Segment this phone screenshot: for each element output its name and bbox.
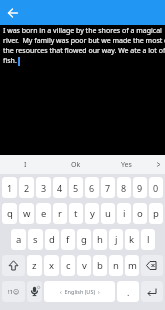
button[interactable]: a	[11, 229, 26, 250]
button[interactable]: !1☺	[2, 281, 25, 302]
button[interactable]	[7, 7, 19, 19]
button[interactable]: Yes	[101, 155, 152, 174]
staticText: u	[105, 207, 111, 220]
staticText: z	[32, 259, 37, 272]
staticText: d	[49, 233, 55, 246]
button[interactable]: q	[2, 203, 17, 224]
button[interactable]: p	[149, 203, 163, 224]
button[interactable]: b	[93, 255, 107, 276]
staticText: 0	[153, 182, 159, 194]
button[interactable]: v	[77, 255, 91, 276]
button[interactable]: Ok	[50, 155, 101, 174]
button[interactable]: t	[69, 203, 83, 224]
staticText: t	[74, 207, 78, 220]
staticText: I	[24, 160, 27, 170]
staticText: 7	[105, 182, 111, 194]
button[interactable]: h	[93, 229, 107, 250]
staticText: 3	[41, 182, 47, 194]
button[interactable]: u	[101, 203, 115, 224]
button[interactable]: .	[117, 281, 139, 302]
staticText: 4	[57, 182, 63, 194]
staticText: k	[129, 233, 135, 246]
staticText: c	[66, 259, 71, 272]
button[interactable]: s	[28, 229, 43, 250]
button[interactable]: n	[109, 255, 123, 276]
staticText: .	[127, 286, 130, 298]
staticText: y	[90, 207, 95, 220]
staticText: 5	[73, 182, 79, 194]
button[interactable]: ‹ English (US) ›	[44, 281, 115, 302]
staticText: o	[137, 207, 143, 220]
button[interactable]: 4	[53, 177, 67, 198]
staticText: r	[58, 207, 62, 220]
button[interactable]	[27, 281, 42, 302]
staticText: m	[128, 259, 137, 272]
staticText: 9	[137, 182, 143, 194]
staticText: a	[16, 233, 22, 246]
staticText: p	[153, 207, 159, 220]
staticText: ‹ English (US) ›	[60, 288, 100, 295]
button[interactable]: 6	[85, 177, 99, 198]
button[interactable]: 7	[101, 177, 115, 198]
staticText: s	[33, 233, 38, 246]
button[interactable]: c	[61, 255, 75, 276]
button[interactable]: 0	[149, 177, 163, 198]
button[interactable]: d	[45, 229, 59, 250]
button[interactable]: I	[0, 155, 50, 174]
button[interactable]: 3	[36, 177, 51, 198]
staticText: j	[115, 233, 118, 246]
staticText: Ok	[71, 160, 81, 170]
staticText: !1☺	[8, 288, 20, 296]
staticText: w	[23, 207, 31, 220]
staticText: g	[81, 233, 87, 246]
button[interactable]: e	[36, 203, 51, 224]
button[interactable]	[141, 255, 163, 276]
staticText: b	[97, 259, 103, 272]
button[interactable]: 9	[133, 177, 147, 198]
button[interactable]: l	[141, 229, 155, 250]
staticText: f	[66, 233, 70, 246]
button[interactable]: y	[85, 203, 99, 224]
staticText: i	[123, 207, 126, 220]
button[interactable]: 1	[2, 177, 17, 198]
button[interactable]: 2	[19, 177, 34, 198]
staticText: x	[49, 259, 55, 272]
button[interactable]: i	[117, 203, 131, 224]
button[interactable]: m	[125, 255, 139, 276]
button[interactable]: f	[61, 229, 75, 250]
staticText: the resources that flowed our way. We at…	[3, 46, 165, 56]
staticText: river. My family was poor but we made th…	[3, 36, 165, 46]
staticText: v	[82, 259, 87, 272]
staticText: Yes	[121, 160, 132, 170]
staticText: 6	[89, 182, 95, 194]
button[interactable]: z	[27, 255, 42, 276]
button[interactable]	[141, 281, 163, 302]
staticText: n	[113, 259, 119, 272]
button[interactable]: 8	[117, 177, 131, 198]
staticText: 8	[121, 182, 127, 194]
button[interactable]: o	[133, 203, 147, 224]
staticText: I was born in a village by the shores of…	[3, 26, 162, 36]
button[interactable]: 5	[69, 177, 83, 198]
button[interactable]: j	[109, 229, 123, 250]
staticText: l	[147, 233, 150, 246]
button[interactable]: g	[77, 229, 91, 250]
staticText: fish.	[3, 56, 17, 66]
button[interactable]: k	[125, 229, 139, 250]
button[interactable]: r	[53, 203, 67, 224]
staticText: e	[41, 207, 47, 220]
button[interactable]: x	[44, 255, 59, 276]
button[interactable]	[2, 255, 25, 276]
staticText: 1	[7, 182, 13, 194]
button[interactable]: w	[19, 203, 34, 224]
staticText: h	[97, 233, 103, 246]
staticText: q	[7, 207, 13, 220]
button[interactable]	[152, 155, 165, 174]
staticText: 2	[24, 182, 30, 194]
